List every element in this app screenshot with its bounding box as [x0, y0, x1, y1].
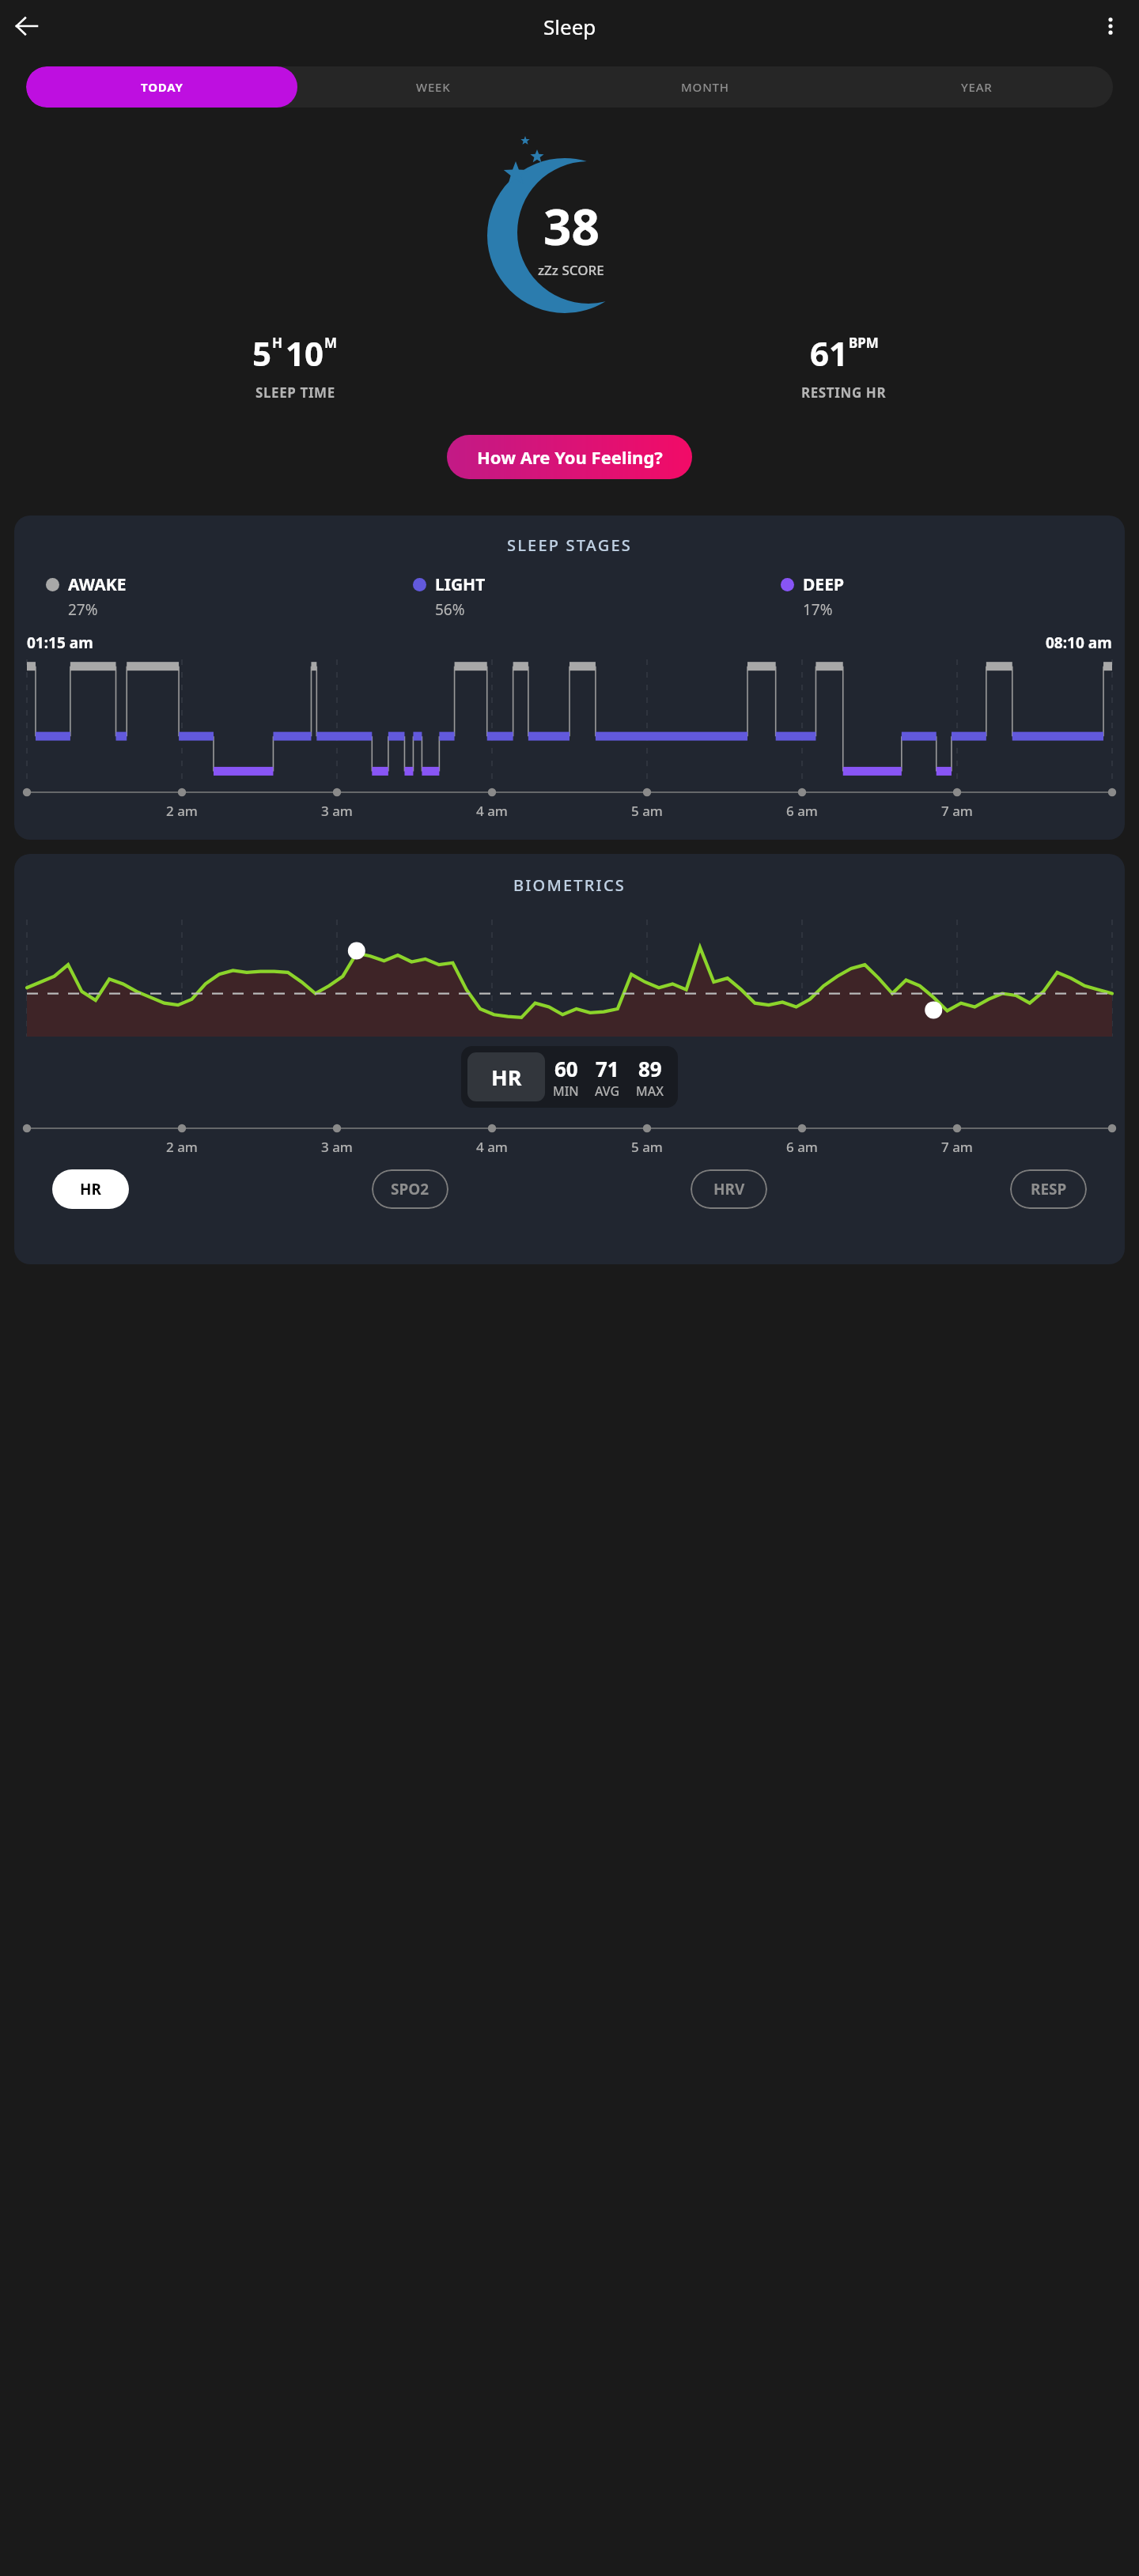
staticText: 56% — [435, 599, 465, 620]
staticText: SLEEP STAGES — [14, 534, 1125, 556]
staticText: LIGHT — [435, 573, 486, 596]
staticText: MONTH — [681, 79, 729, 95]
staticText: 3 am — [321, 802, 353, 820]
staticText: 2 am — [166, 802, 198, 820]
staticText: 61 — [810, 330, 849, 376]
staticText: 5 — [252, 330, 272, 376]
button[interactable]: HR — [52, 1169, 129, 1209]
button[interactable]: WEEK — [297, 66, 569, 108]
staticText: 10 — [286, 330, 324, 376]
staticText: 2 am — [166, 1138, 198, 1156]
staticText: YEAR — [961, 79, 993, 95]
staticText: SLEEP TIME — [255, 383, 335, 402]
staticText: WEEK — [416, 79, 451, 95]
staticText: 5 am — [631, 1138, 663, 1156]
staticText: 17% — [803, 599, 833, 620]
button[interactable]: TODAY — [26, 66, 297, 108]
staticText: 6 am — [786, 1138, 818, 1156]
staticText: 4 am — [476, 1138, 508, 1156]
staticText: 60 — [554, 1055, 578, 1082]
staticText: SPO2 — [391, 1179, 429, 1199]
staticText: 01:15 am — [27, 633, 93, 653]
staticText: 4 am — [476, 802, 508, 820]
button[interactable]: MONTH — [569, 66, 841, 108]
staticText: How Are You Feeling? — [477, 445, 663, 469]
staticText: 3 am — [321, 1138, 353, 1156]
staticText: 89 — [638, 1055, 662, 1082]
staticText: 7 am — [941, 802, 973, 820]
staticText: BPM — [849, 334, 879, 352]
staticText: HR — [491, 1063, 522, 1092]
staticText: BIOMETRICS — [14, 874, 1125, 896]
staticText: M — [324, 334, 338, 352]
button[interactable]: Back — [5, 4, 49, 48]
staticText: 71 — [596, 1055, 619, 1082]
staticText: AWAKE — [68, 573, 127, 596]
staticText: 08:10 am — [1046, 633, 1112, 653]
staticText: TODAY — [141, 79, 184, 95]
staticText: H — [272, 334, 283, 352]
staticText: 5 am — [631, 802, 663, 820]
button[interactable]: How Are You Feeling? — [447, 435, 692, 479]
staticText: AVG — [595, 1082, 620, 1100]
staticText: 7 am — [941, 1138, 973, 1156]
staticText: RESTING HR — [801, 383, 887, 402]
button[interactable]: SPO2 — [372, 1169, 448, 1209]
button[interactable]: YEAR — [841, 66, 1113, 108]
staticText: 27% — [68, 599, 98, 620]
staticText: HRV — [713, 1179, 745, 1199]
staticText: Sleep — [543, 13, 596, 40]
staticText: HR — [80, 1179, 101, 1199]
button[interactable]: HR — [467, 1052, 545, 1101]
staticText: MAX — [636, 1082, 664, 1100]
staticText: 38 — [543, 193, 600, 259]
staticText: 6 am — [786, 802, 818, 820]
button[interactable]: HRV — [691, 1169, 767, 1209]
staticText: MIN — [553, 1082, 579, 1100]
staticText: DEEP — [803, 573, 844, 596]
button[interactable]: RESP — [1010, 1169, 1087, 1209]
button[interactable]: More options — [1090, 6, 1131, 47]
staticText: zZz SCORE — [538, 261, 604, 279]
staticText: RESP — [1031, 1179, 1067, 1199]
